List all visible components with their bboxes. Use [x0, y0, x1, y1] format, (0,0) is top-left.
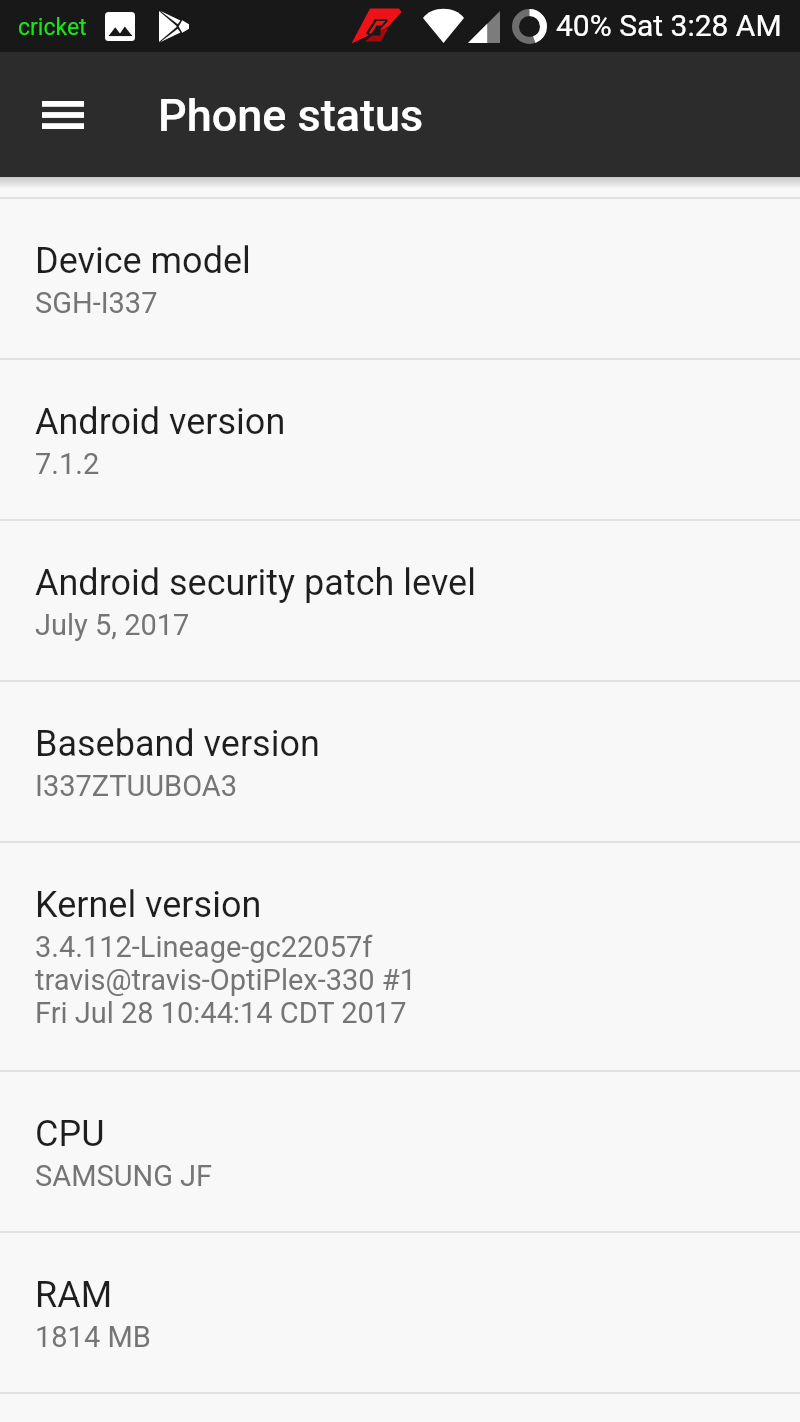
staticText: travis@travis-OptiPlex-330 #1: [35, 964, 416, 997]
button[interactable]: Baseband version: [0, 680, 800, 841]
button[interactable]: Android security patch level: [0, 519, 800, 680]
staticText: RAM: [35, 1274, 113, 1316]
staticText: 3.4.112-Lineage-gc22057f: [35, 931, 373, 964]
staticText: Android version: [35, 401, 286, 443]
staticText: Fri Jul 28 10:44:14 CDT 2017: [35, 997, 407, 1030]
button[interactable]: CPU: [0, 1070, 800, 1231]
button[interactable]: Device model: [0, 197, 800, 358]
staticText: Kernel version: [35, 884, 262, 926]
staticText: Android security patch level: [35, 562, 476, 604]
staticText: 1814 MB: [35, 1321, 151, 1354]
button[interactable]: Open navigation menu: [31, 83, 95, 147]
staticText: Baseband version: [35, 723, 320, 765]
staticText: cricket: [18, 14, 87, 41]
staticText: Device model: [35, 240, 251, 282]
button[interactable]: RAM: [0, 1231, 800, 1392]
staticText: SGH-I337: [35, 287, 158, 320]
staticText: July 5, 2017: [35, 609, 190, 642]
staticText: SAMSUNG JF: [35, 1160, 213, 1193]
staticText: Phone status: [158, 89, 424, 142]
staticText: 40% Sat 3:28 AM: [556, 8, 782, 43]
button[interactable]: Android version: [0, 358, 800, 519]
button[interactable]: Kernel version: [0, 841, 800, 1070]
staticText: 7.1.2: [35, 448, 100, 481]
staticText: CPU: [35, 1113, 105, 1155]
staticText: I337ZTUUBOA3: [35, 770, 238, 803]
